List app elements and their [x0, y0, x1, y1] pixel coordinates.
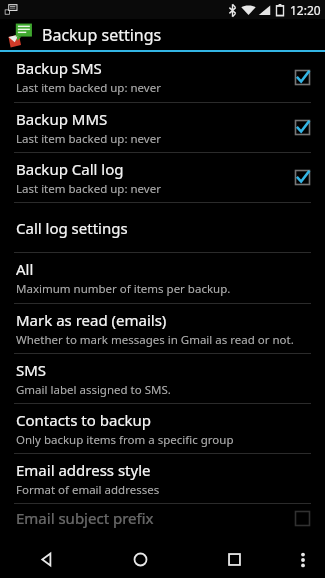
staticText: All — [16, 259, 34, 279]
button[interactable]: Backup SMS — [0, 52, 325, 102]
button[interactable]: Email address style — [0, 454, 325, 503]
button[interactable]: Recent apps — [187, 541, 281, 578]
staticText: Only backup items from a specific group — [16, 432, 234, 448]
staticText: Mark as read (emails) — [16, 310, 167, 330]
staticText: SMS — [16, 360, 47, 380]
staticText: Maximum number of items per backup. — [16, 281, 231, 297]
staticText: Last item backed up: never — [16, 80, 161, 96]
staticText: Last item backed up: never — [16, 131, 161, 147]
staticText: Backup MMS — [16, 109, 108, 129]
staticText: Format of email addresses — [16, 482, 160, 498]
staticText: Whether to mark messages in Gmail as rea… — [16, 332, 294, 348]
button[interactable]: All — [0, 253, 325, 303]
staticText: Contacts to backup — [16, 410, 152, 430]
button[interactable]: More options — [281, 541, 325, 578]
staticText: Backup settings — [42, 24, 162, 46]
button[interactable]: Backup MMS — [0, 103, 325, 152]
staticText: 12:20 — [290, 2, 321, 18]
staticText: Last item backed up: never — [16, 181, 161, 197]
staticText: Backup SMS — [16, 58, 102, 78]
button[interactable]: SMS — [0, 354, 325, 403]
staticText: Call log settings — [16, 218, 128, 238]
button[interactable]: Contacts to backup — [0, 404, 325, 453]
staticText: Email subject prefix — [16, 508, 154, 528]
button[interactable]: Call log settings — [0, 203, 325, 252]
button[interactable]: Backup settings — [0, 19, 325, 50]
staticText: Backup Call log — [16, 159, 124, 179]
staticText: Email address style — [16, 460, 151, 480]
button[interactable]: Home — [93, 541, 187, 578]
button[interactable]: Back — [0, 541, 93, 578]
staticText: Gmail label assigned to SMS. — [16, 382, 171, 398]
button[interactable]: Mark as read (emails) — [0, 304, 325, 353]
button[interactable]: Backup Call log — [0, 153, 325, 202]
button[interactable]: Email subject prefix — [0, 504, 325, 532]
